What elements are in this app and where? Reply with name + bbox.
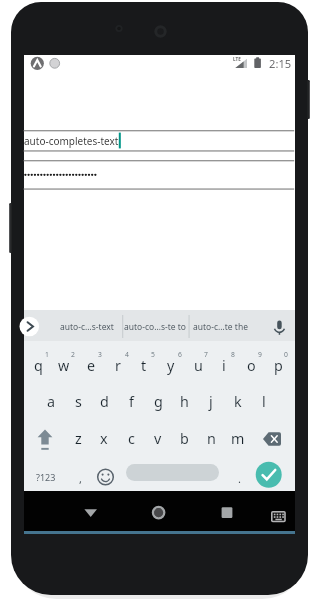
staticText: 0 bbox=[284, 350, 288, 359]
staticText: v bbox=[154, 429, 162, 448]
button[interactable] bbox=[208, 498, 246, 528]
button[interactable]: o bbox=[238, 349, 264, 381]
button[interactable]: q bbox=[25, 349, 51, 381]
staticText: k bbox=[234, 392, 242, 411]
staticText: 9 bbox=[258, 350, 262, 359]
staticText: 1 bbox=[45, 350, 49, 359]
button[interactable] bbox=[260, 421, 290, 455]
staticText: s bbox=[75, 392, 82, 411]
button[interactable]: m bbox=[225, 421, 251, 455]
button[interactable]: auto-co…s-te to bbox=[123, 316, 187, 338]
staticText: ?123 bbox=[36, 471, 56, 483]
button[interactable]: , bbox=[70, 463, 90, 493]
staticText: c bbox=[128, 429, 135, 448]
button[interactable]: e bbox=[78, 349, 104, 381]
staticText: f bbox=[129, 392, 134, 411]
staticText: a bbox=[47, 392, 56, 411]
button[interactable] bbox=[253, 459, 284, 490]
button[interactable] bbox=[139, 498, 177, 528]
button[interactable] bbox=[92, 461, 119, 492]
button[interactable]: . bbox=[229, 463, 249, 493]
staticText: , bbox=[79, 471, 82, 486]
staticText: o bbox=[247, 356, 256, 375]
staticText: m bbox=[231, 429, 245, 448]
button[interactable]: a bbox=[38, 384, 64, 418]
staticText: auto-c…te the bbox=[193, 321, 248, 333]
button[interactable]: n bbox=[198, 421, 224, 455]
button[interactable]: k bbox=[225, 384, 251, 418]
button[interactable] bbox=[24, 160, 294, 189]
staticText: auto-co…s-te to bbox=[124, 321, 187, 333]
button[interactable]: y bbox=[158, 349, 184, 381]
staticText: i bbox=[222, 356, 226, 375]
staticText: w bbox=[58, 356, 70, 375]
staticText: 2 bbox=[71, 350, 75, 359]
button[interactable] bbox=[24, 130, 294, 151]
staticText: 3 bbox=[98, 350, 102, 359]
button[interactable] bbox=[31, 421, 59, 455]
button[interactable]: z bbox=[65, 421, 91, 455]
staticText: 6 bbox=[178, 350, 182, 359]
button[interactable]: x bbox=[91, 421, 117, 455]
button[interactable]: d bbox=[91, 384, 117, 418]
staticText: z bbox=[75, 429, 82, 448]
button[interactable]: i bbox=[211, 349, 237, 381]
button[interactable] bbox=[72, 498, 110, 528]
button[interactable]: w bbox=[51, 349, 77, 381]
button[interactable]: v bbox=[145, 421, 171, 455]
button[interactable]: g bbox=[145, 384, 171, 418]
staticText: h bbox=[180, 392, 189, 411]
button[interactable]: t bbox=[131, 349, 157, 381]
staticText: 4 bbox=[125, 350, 129, 359]
button[interactable] bbox=[126, 464, 219, 481]
staticText: d bbox=[100, 392, 109, 411]
button[interactable] bbox=[268, 314, 292, 338]
button[interactable]: c bbox=[118, 421, 144, 455]
button[interactable]: u bbox=[185, 349, 211, 381]
button[interactable]: auto-c…s-text bbox=[54, 316, 120, 338]
staticText: n bbox=[207, 429, 216, 448]
staticText: u bbox=[194, 356, 203, 375]
staticText: x bbox=[100, 429, 108, 448]
staticText: b bbox=[180, 429, 189, 448]
staticText: r bbox=[115, 356, 121, 375]
button[interactable]: l bbox=[251, 384, 277, 418]
staticText: . bbox=[238, 471, 241, 486]
staticText: auto-c…s-text bbox=[60, 321, 114, 333]
button[interactable]: ?123 bbox=[29, 462, 63, 492]
staticText: LTE bbox=[233, 56, 241, 62]
staticText: e bbox=[87, 356, 96, 375]
button[interactable]: p bbox=[265, 349, 291, 381]
button[interactable] bbox=[266, 503, 292, 530]
button[interactable]: f bbox=[118, 384, 144, 418]
staticText: g bbox=[154, 392, 163, 411]
button[interactable]: auto-c…te the bbox=[190, 316, 250, 338]
staticText: q bbox=[34, 356, 43, 375]
staticText: t bbox=[141, 356, 147, 375]
button[interactable]: s bbox=[65, 384, 91, 418]
staticText: 7 bbox=[204, 350, 208, 359]
staticText: 8 bbox=[231, 350, 235, 359]
button[interactable]: auto-completes-text bbox=[24, 133, 134, 148]
button[interactable]: j bbox=[198, 384, 224, 418]
staticText: 2:15 bbox=[269, 56, 292, 71]
staticText: p bbox=[274, 356, 283, 375]
staticText: y bbox=[167, 356, 175, 375]
staticText: auto-completes-text bbox=[24, 134, 119, 148]
staticText: l bbox=[262, 392, 266, 411]
staticText: 5 bbox=[151, 350, 155, 359]
button[interactable] bbox=[22, 316, 44, 338]
button[interactable]: r bbox=[105, 349, 131, 381]
staticText: j bbox=[209, 392, 213, 411]
button[interactable]: h bbox=[171, 384, 197, 418]
button[interactable]: b bbox=[171, 421, 197, 455]
